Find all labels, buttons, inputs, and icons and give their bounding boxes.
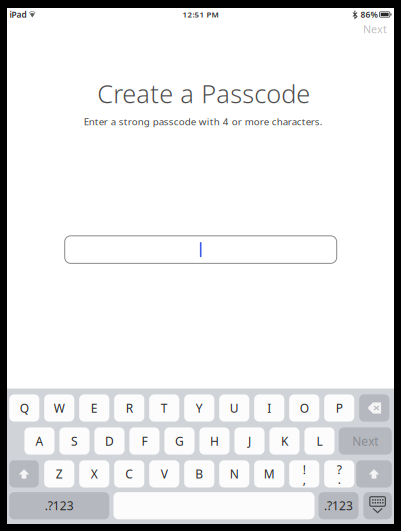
button[interactable]: K — [269, 427, 299, 455]
staticText: F — [141, 433, 147, 449]
staticText: iPad — [9, 9, 26, 20]
staticText: .?123 — [324, 498, 353, 514]
button[interactable]: X — [79, 460, 109, 487]
staticText: P — [336, 400, 343, 416]
button[interactable]: L — [304, 427, 334, 455]
button[interactable]: H — [199, 427, 229, 455]
button[interactable]: P — [324, 394, 354, 422]
staticText: S — [71, 433, 78, 449]
button[interactable]: O — [289, 394, 319, 422]
staticText: D — [105, 433, 114, 449]
staticText: R — [126, 400, 133, 416]
staticText: Z — [56, 466, 63, 482]
staticText: Next — [363, 22, 387, 36]
staticText: O — [300, 400, 309, 416]
staticText: E — [91, 400, 98, 416]
staticText: H — [210, 433, 219, 449]
staticText: B — [195, 466, 203, 482]
staticText: 12:51 PM — [182, 9, 218, 20]
staticText: C — [125, 466, 133, 482]
staticText: L — [316, 433, 322, 449]
button[interactable]: Next — [339, 427, 392, 455]
button[interactable]: T — [149, 394, 179, 422]
staticText: N — [230, 466, 239, 482]
staticText: J — [248, 433, 251, 449]
button[interactable]: E — [79, 394, 109, 422]
staticText: G — [175, 433, 184, 449]
staticText: V — [161, 466, 168, 482]
button[interactable]: W — [44, 394, 74, 422]
button[interactable]: V — [149, 460, 179, 487]
staticText: K — [281, 433, 288, 449]
button[interactable]: Delete — [359, 394, 389, 422]
button[interactable]: Shift — [356, 460, 392, 487]
button[interactable]: J — [234, 427, 264, 455]
button[interactable]: C — [114, 460, 144, 487]
button[interactable]: Y — [184, 394, 214, 422]
button[interactable]: M — [254, 460, 284, 487]
staticText: W — [54, 400, 65, 416]
button[interactable]: .?123 — [318, 492, 358, 519]
staticText: Next — [352, 433, 378, 449]
staticText: ? — [337, 461, 342, 478]
button[interactable]: ! — [289, 460, 319, 487]
staticText: ! — [303, 461, 306, 478]
staticText: . — [338, 471, 341, 487]
button[interactable]: Z — [44, 460, 74, 487]
staticText: X — [91, 466, 98, 482]
staticText: A — [35, 433, 43, 449]
staticText: T — [161, 400, 168, 416]
staticText: , — [303, 471, 306, 487]
button[interactable]: I — [254, 394, 284, 422]
staticText: U — [230, 400, 239, 416]
staticText: Q — [20, 400, 29, 416]
button[interactable]: D — [94, 427, 124, 455]
button[interactable]: A — [24, 427, 54, 455]
staticText: Create a Passcode — [97, 76, 310, 110]
staticText: Y — [196, 400, 203, 416]
button[interactable]: F — [129, 427, 159, 455]
button[interactable]: U — [219, 394, 249, 422]
button[interactable]: B — [184, 460, 214, 487]
button[interactable]: .?123 — [9, 492, 109, 519]
staticText: M — [264, 466, 275, 482]
button[interactable]: ? — [324, 460, 354, 487]
button[interactable]: G — [164, 427, 194, 455]
button[interactable]: Next — [343, 18, 394, 40]
staticText: I — [267, 400, 271, 416]
button[interactable]: S — [59, 427, 89, 455]
button[interactable]: Q — [9, 394, 39, 422]
staticText: .?123 — [45, 498, 74, 514]
button[interactable]: N — [219, 460, 249, 487]
button[interactable]: Shift — [9, 460, 39, 487]
button[interactable]: Hide keyboard — [363, 492, 392, 519]
staticText: Enter a strong passcode with 4 or more c… — [84, 115, 323, 128]
staticText: 86% — [360, 9, 377, 20]
button[interactable]: R — [114, 394, 144, 422]
